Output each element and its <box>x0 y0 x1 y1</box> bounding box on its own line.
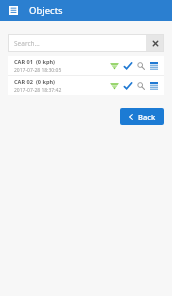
button[interactable]: CAR 01 (0 kph) <box>8 56 164 75</box>
button[interactable]: Clear search <box>146 34 164 52</box>
staticText: CAR 01 (0 kph) <box>14 58 55 66</box>
staticText: 2017-07-28 18:37:42 <box>14 87 62 94</box>
button[interactable]: Search object <box>134 59 147 72</box>
button[interactable]: Signal status <box>108 59 121 72</box>
button[interactable]: Track object <box>121 79 134 92</box>
staticText: CAR 02 (0 kph) <box>14 78 55 86</box>
staticText: 2017-07-28 18:30:05 <box>14 67 62 74</box>
button[interactable]: Track object <box>121 59 134 72</box>
staticText: Search... <box>14 39 40 48</box>
button[interactable]: Search object <box>134 79 147 92</box>
button[interactable]: Search... <box>8 34 146 52</box>
button[interactable]: Show details <box>147 59 160 72</box>
button[interactable]: Back <box>120 108 164 125</box>
button[interactable]: Open navigation menu <box>6 3 21 18</box>
button[interactable]: Signal status <box>108 79 121 92</box>
button[interactable]: Show details <box>147 79 160 92</box>
staticText: Back <box>138 112 156 122</box>
button[interactable]: CAR 02 (0 kph) <box>8 76 164 95</box>
staticText: Objects <box>29 4 63 17</box>
